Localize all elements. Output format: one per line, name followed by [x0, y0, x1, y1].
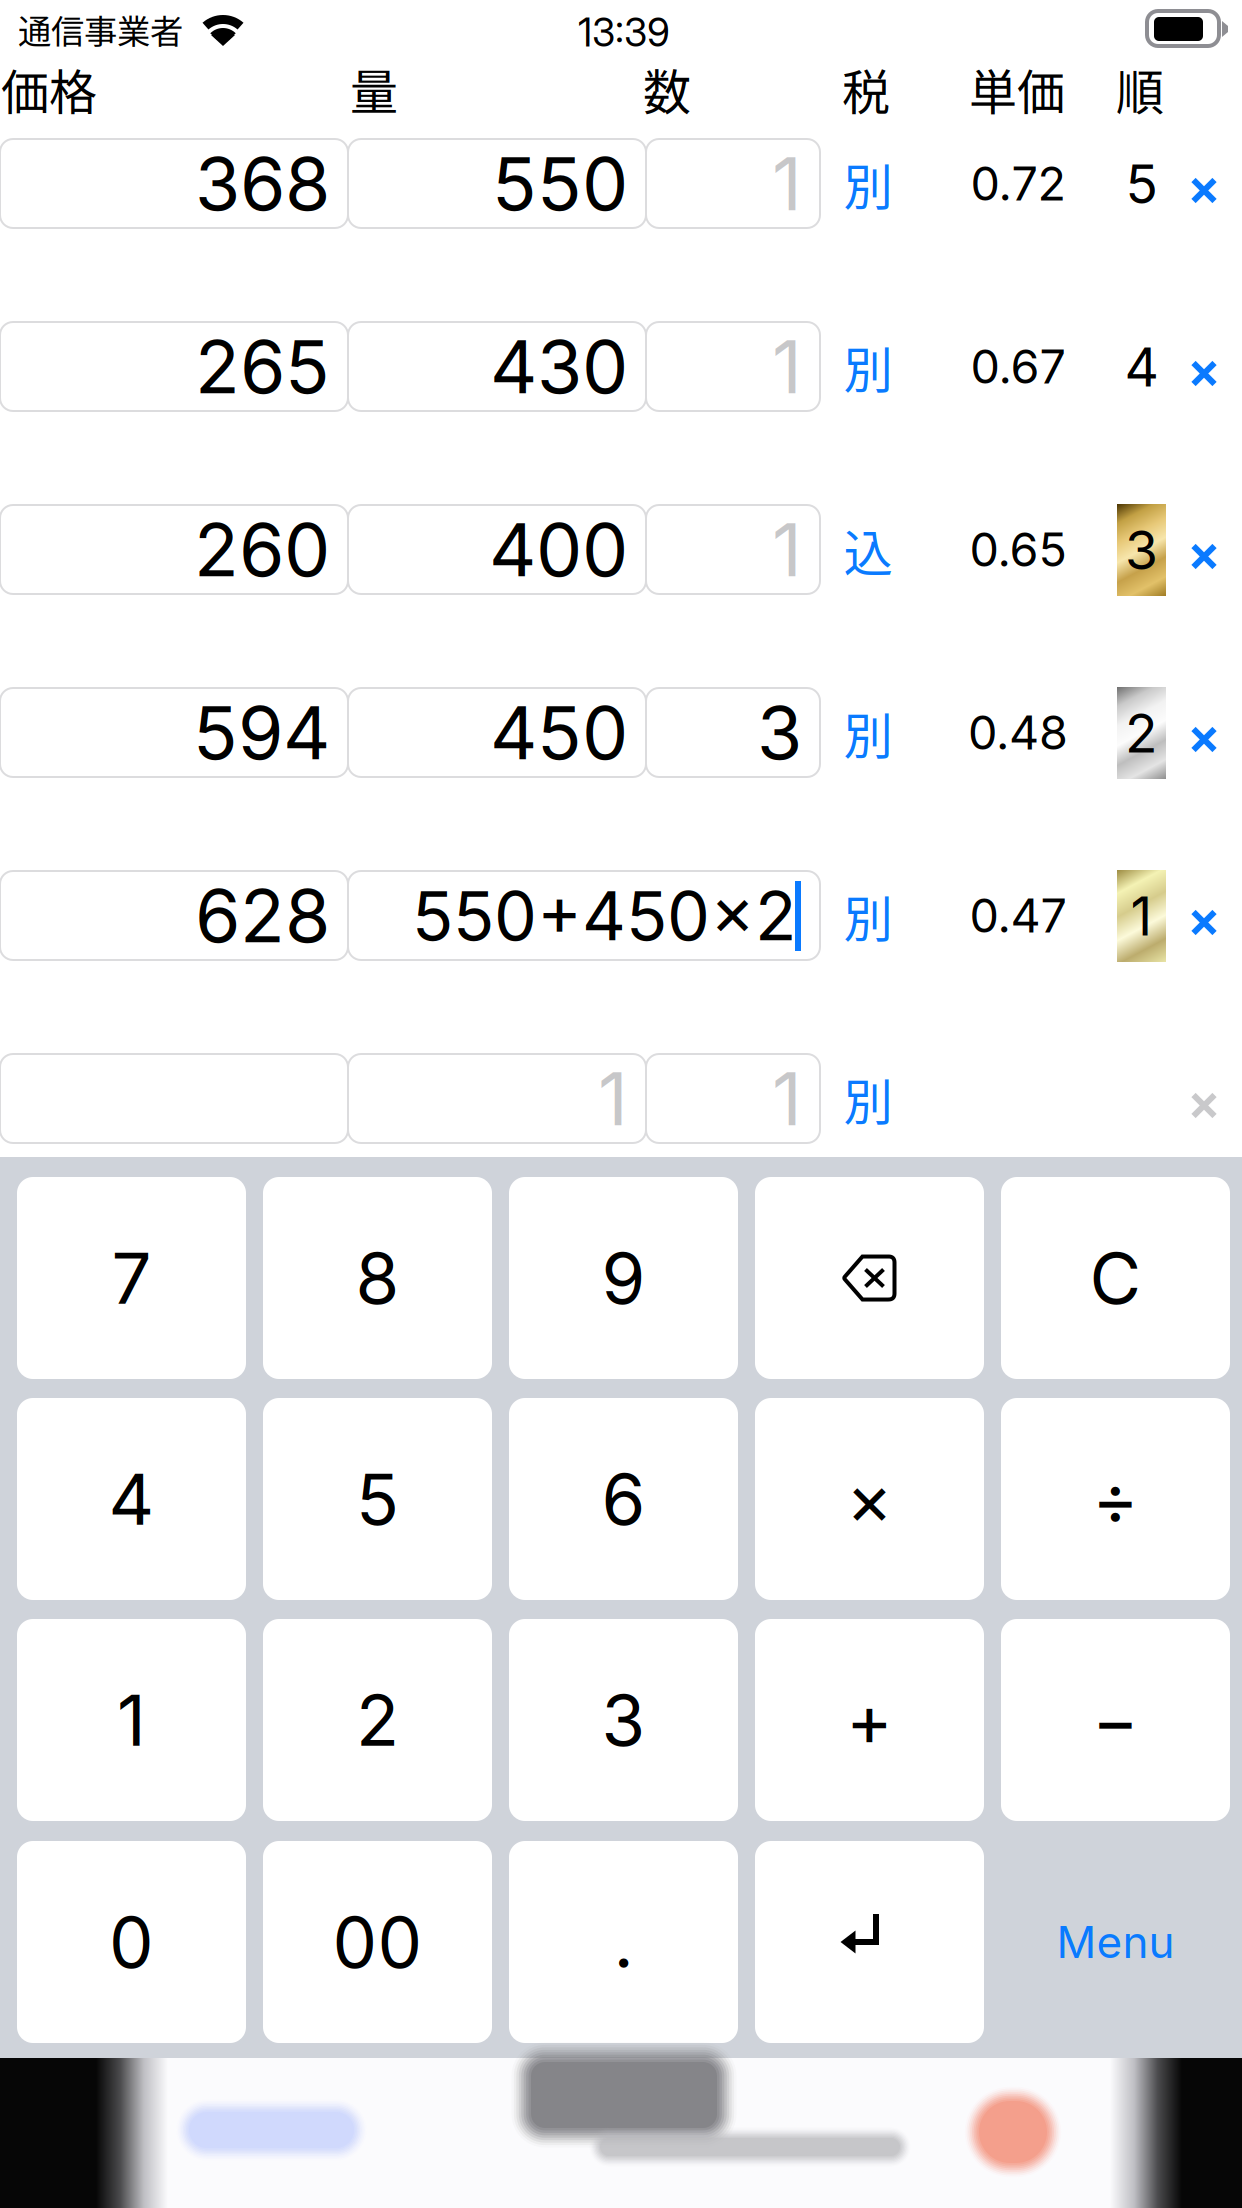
button[interactable]: Number field	[348, 505, 646, 594]
staticText: .	[613, 1899, 633, 1985]
button[interactable]: Delete row	[1178, 512, 1230, 601]
staticText: 2	[356, 1677, 399, 1763]
staticText: 1	[772, 139, 802, 228]
staticText: 0.67	[970, 338, 1065, 395]
button[interactable]: Number field	[0, 139, 348, 228]
staticText: 400	[489, 505, 628, 594]
staticText: 2	[1125, 701, 1158, 765]
staticText: 別	[843, 148, 892, 219]
button[interactable]: Delete row	[1178, 1061, 1230, 1150]
button[interactable]: −	[1001, 1619, 1230, 1821]
button[interactable]: 6	[509, 1398, 738, 1600]
staticText: 0.48	[968, 704, 1068, 761]
staticText: 1	[772, 505, 802, 594]
button[interactable]: 別	[837, 871, 899, 960]
staticText: 550	[492, 139, 628, 228]
button[interactable]: 別	[837, 139, 899, 228]
staticText: 1	[117, 1677, 146, 1763]
staticText: 594	[193, 688, 330, 777]
button[interactable]: Number field	[348, 688, 646, 777]
staticText: 1	[1130, 884, 1152, 948]
button[interactable]: 00	[263, 1841, 492, 2043]
button[interactable]: Number field	[0, 688, 348, 777]
staticText: 3	[757, 688, 802, 777]
staticText: 260	[194, 505, 330, 594]
button[interactable]: Number field	[348, 1054, 646, 1143]
button[interactable]: 2	[263, 1619, 492, 1821]
button[interactable]: Number field	[0, 871, 348, 960]
staticText: ÷	[1092, 1456, 1139, 1542]
staticText: 3	[601, 1677, 645, 1763]
button[interactable]: Delete row	[1178, 329, 1230, 418]
button[interactable]: 9	[509, 1177, 738, 1379]
button[interactable]: Number field	[0, 505, 348, 594]
staticText: 1	[598, 1054, 628, 1143]
button[interactable]: Number field	[646, 322, 820, 411]
button[interactable]: Number field	[646, 688, 820, 777]
button[interactable]: 別	[837, 322, 899, 411]
staticText: 順	[1116, 54, 1164, 123]
staticText: 628	[195, 871, 330, 960]
staticText: ×	[846, 1456, 893, 1542]
staticText: 0.47	[969, 887, 1066, 944]
staticText: 0	[109, 1899, 154, 1985]
button[interactable]: Number field	[646, 505, 820, 594]
staticText: 4	[108, 1456, 154, 1542]
staticText: 5	[356, 1456, 399, 1542]
staticText: 3	[1125, 518, 1158, 582]
staticText: 量	[350, 54, 398, 123]
button[interactable]: Delete row	[1178, 146, 1230, 235]
button[interactable]: +	[755, 1619, 984, 1821]
staticText: 数	[643, 54, 691, 123]
button[interactable]: 7	[17, 1177, 246, 1379]
staticText: Menu	[1056, 1915, 1174, 1969]
button[interactable]: Number field	[0, 322, 348, 411]
staticText: 0.65	[969, 521, 1066, 578]
staticText: 税	[842, 54, 890, 123]
button[interactable]: Delete row	[1178, 695, 1230, 784]
button[interactable]: Backspace	[755, 1177, 984, 1379]
staticText: 1	[772, 1054, 802, 1143]
staticText: 6	[601, 1456, 645, 1542]
staticText: 通信事業者	[18, 5, 183, 53]
button[interactable]: 込	[837, 505, 899, 594]
button[interactable]: 1	[17, 1619, 246, 1821]
button[interactable]: C	[1001, 1177, 1230, 1379]
button[interactable]: Number field	[348, 139, 646, 228]
staticText: 5	[1125, 152, 1157, 216]
staticText: −	[1092, 1677, 1139, 1763]
staticText: C	[1089, 1235, 1141, 1321]
staticText: 1	[772, 322, 802, 411]
button[interactable]: ÷	[1001, 1398, 1230, 1600]
staticText: 価格	[1, 54, 97, 123]
button[interactable]: Number field	[646, 1054, 820, 1143]
staticText: 込	[843, 514, 892, 585]
staticText: 368	[195, 139, 330, 228]
staticText: 別	[843, 331, 892, 402]
button[interactable]: 8	[263, 1177, 492, 1379]
staticText: 450	[490, 688, 628, 777]
staticText: 430	[490, 322, 628, 411]
button[interactable]: .	[509, 1841, 738, 2043]
staticText: +	[846, 1677, 893, 1763]
button[interactable]: 4	[17, 1398, 246, 1600]
button[interactable]: 別	[837, 688, 899, 777]
staticText: 7	[111, 1235, 151, 1321]
button[interactable]: Delete row	[1178, 878, 1230, 967]
staticText: 別	[843, 1063, 892, 1134]
staticText: 別	[843, 697, 892, 768]
button[interactable]: 3	[509, 1619, 738, 1821]
button[interactable]: Number field	[348, 871, 820, 960]
button[interactable]: Number field	[646, 139, 820, 228]
staticText: 550+450×2	[412, 874, 796, 957]
button[interactable]: Return	[755, 1841, 984, 2043]
button[interactable]: 5	[263, 1398, 492, 1600]
button[interactable]: 別	[837, 1054, 899, 1143]
button[interactable]: 0	[17, 1841, 246, 2043]
button[interactable]: Number field	[348, 322, 646, 411]
button[interactable]: Number field	[0, 1054, 348, 1143]
button[interactable]: Menu	[1001, 1841, 1230, 2043]
staticText: 9	[601, 1235, 645, 1321]
staticText: 13:39	[578, 9, 670, 56]
button[interactable]: ×	[755, 1398, 984, 1600]
